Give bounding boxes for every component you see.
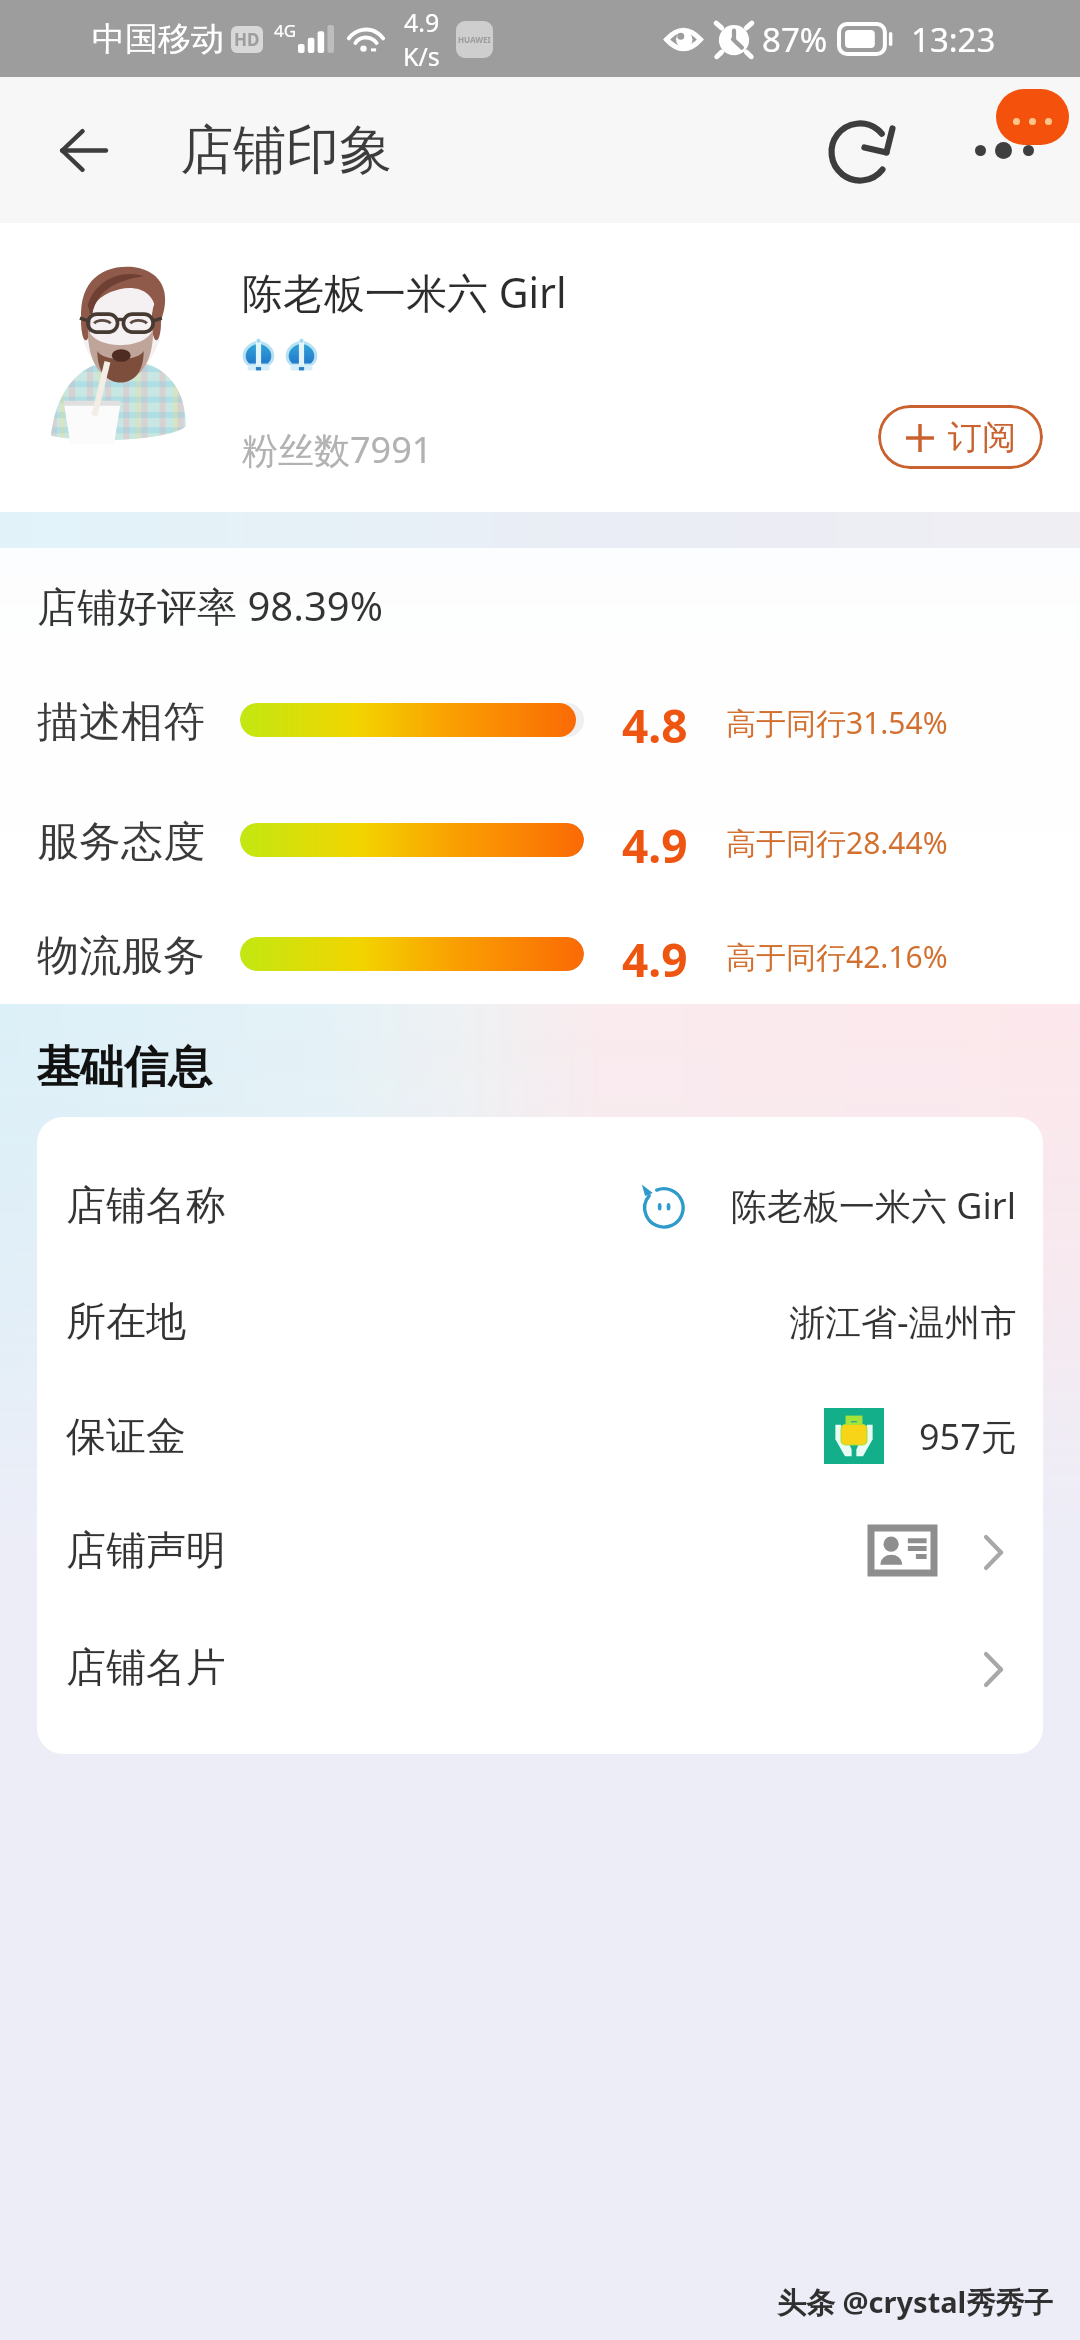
button[interactable]: 所在地 [66, 1293, 1017, 1349]
button[interactable]: 店铺声明 [66, 1522, 1017, 1578]
button[interactable]: 订阅 [878, 405, 1043, 469]
button[interactable]: 店铺名片 [66, 1639, 1017, 1695]
staticText: K/s [403, 39, 440, 73]
staticText: HUAWEI [458, 34, 491, 45]
staticText: 店铺名称 [66, 1180, 226, 1230]
staticText: 957元 [919, 1412, 1017, 1461]
staticText: 基础信息 [36, 1040, 212, 1095]
button[interactable]: More options [962, 117, 1054, 183]
staticText: 13:23 [911, 17, 996, 62]
staticText: 店铺好评率 98.39% [37, 578, 383, 633]
staticText: 浙江省-温州市 [789, 1297, 1017, 1346]
staticText: 所在地 [66, 1296, 186, 1346]
staticText: 头条 @crystal秀秀子 [777, 2282, 1054, 2322]
staticText: 高于同行28.44% [726, 822, 948, 863]
staticText: 4.9 [622, 928, 688, 988]
staticText: 粉丝数7991 [242, 425, 433, 474]
staticText: 4.8 [622, 694, 688, 754]
staticText: HD [234, 28, 260, 51]
staticText: 高于同行42.16% [726, 936, 948, 977]
button[interactable]: Notifications [996, 89, 1069, 145]
button[interactable]: Refresh [829, 120, 893, 184]
staticText: 4G [274, 19, 297, 42]
staticText: 中国移动 [92, 18, 224, 60]
button[interactable]: Back [36, 103, 130, 197]
staticText: 服务态度 [37, 816, 205, 869]
button[interactable]: 店铺名称 [66, 1177, 1017, 1233]
staticText: 店铺印象 [180, 117, 392, 184]
staticText: 陈老板一米六 Girl [731, 1181, 1017, 1230]
staticText: 店铺名片 [66, 1642, 226, 1692]
staticText: 物流服务 [37, 930, 205, 983]
staticText: 陈老板一米六 Girl [242, 264, 567, 320]
staticText: 87% [762, 17, 828, 62]
button[interactable]: 保证金 [66, 1408, 1017, 1464]
staticText: 高于同行31.54% [726, 702, 948, 743]
staticText: 4.9 [404, 5, 440, 39]
staticText: 订阅 [948, 416, 1016, 459]
staticText: 描述相符 [37, 696, 205, 749]
staticText: 保证金 [66, 1411, 186, 1461]
staticText: 店铺声明 [66, 1525, 226, 1575]
staticText: 4.9 [622, 814, 688, 874]
